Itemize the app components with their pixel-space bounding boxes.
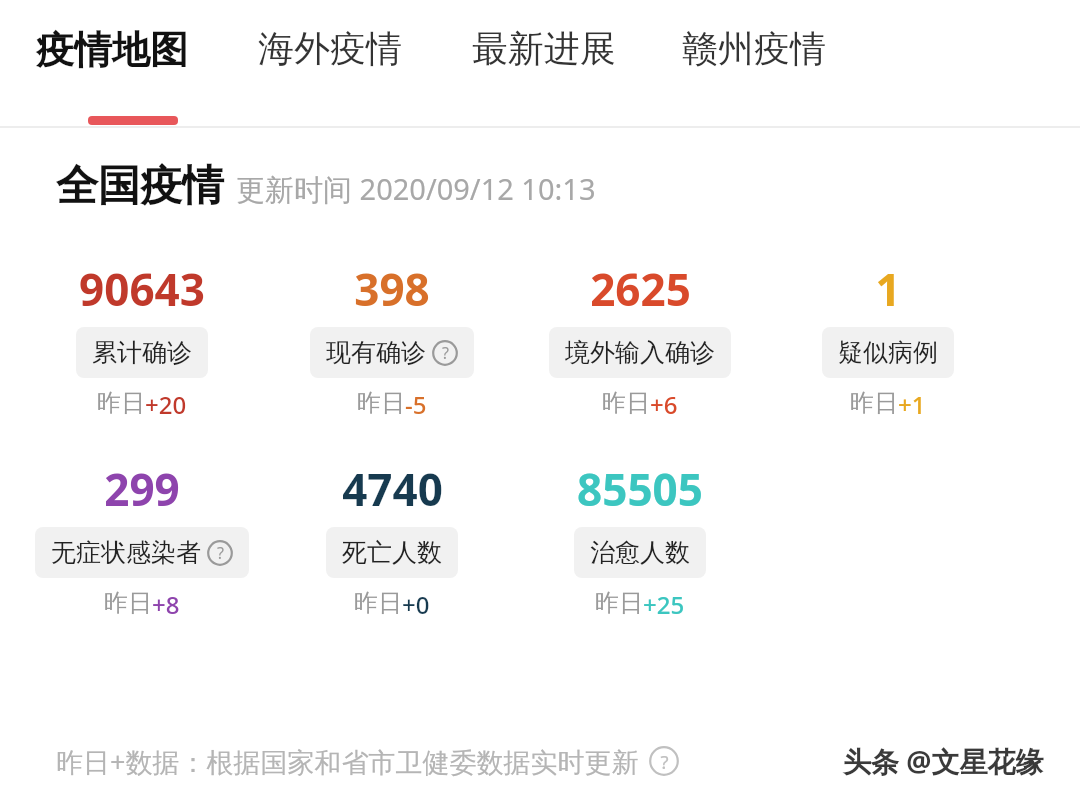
- button[interactable]: 299: [16, 459, 268, 621]
- staticText: 现有确诊: [326, 337, 426, 368]
- staticText: 2625: [590, 259, 691, 319]
- staticText: 死亡人数: [342, 537, 442, 568]
- staticText: 全国疫情: [56, 160, 224, 213]
- staticText: +1: [898, 388, 926, 421]
- staticText: 昨日: [595, 588, 643, 618]
- staticText: 疑似病例: [838, 337, 938, 368]
- staticText: 累计确诊: [92, 337, 192, 368]
- button[interactable]: 最新进展: [472, 26, 616, 71]
- button[interactable]: 赣州疫情: [682, 26, 826, 71]
- staticText: 299: [104, 459, 180, 519]
- button[interactable]: 1: [764, 259, 1012, 421]
- staticText: +6: [650, 388, 678, 421]
- staticText: -5: [405, 388, 427, 421]
- staticText: 398: [354, 259, 430, 319]
- button[interactable]: 疫情地图: [36, 26, 188, 74]
- staticText: +8: [152, 588, 180, 621]
- staticText: 海外疫情: [258, 26, 402, 71]
- staticText: 昨日+数据：根据国家和省市卫健委数据实时更新: [56, 743, 639, 780]
- staticText: 1: [875, 259, 901, 319]
- staticText: 昨日: [97, 388, 145, 418]
- staticText: 昨日: [602, 388, 650, 418]
- button[interactable]: 4740: [268, 459, 516, 621]
- staticText: +25: [643, 588, 685, 621]
- staticText: ?: [442, 342, 449, 364]
- staticText: ?: [660, 749, 669, 774]
- staticText: 昨日: [850, 388, 898, 418]
- staticText: 境外输入确诊: [565, 337, 715, 368]
- staticText: 昨日: [354, 588, 402, 618]
- staticText: 90643: [79, 259, 205, 319]
- staticText: 85505: [577, 459, 703, 519]
- button[interactable]: 2625: [516, 259, 764, 421]
- staticText: 昨日: [104, 588, 152, 618]
- button[interactable]: 海外疫情: [258, 26, 402, 71]
- staticText: ?: [217, 542, 224, 564]
- staticText: 昨日: [357, 388, 405, 418]
- staticText: 疫情地图: [36, 26, 188, 74]
- button[interactable]: 90643: [16, 259, 268, 421]
- staticText: +0: [402, 588, 430, 621]
- staticText: 赣州疫情: [682, 26, 826, 71]
- staticText: 4740: [342, 459, 443, 519]
- staticText: 更新时间 2020/09/12 10:13: [236, 169, 596, 209]
- button[interactable]: 85505: [516, 459, 764, 621]
- staticText: 头条 @文星花缘: [843, 742, 1044, 780]
- staticText: 治愈人数: [590, 537, 690, 568]
- staticText: 最新进展: [472, 26, 616, 71]
- other: 帮助: [649, 746, 679, 776]
- staticText: 无症状感染者: [51, 537, 201, 568]
- button[interactable]: 398: [268, 259, 516, 421]
- staticText: +20: [145, 388, 187, 421]
